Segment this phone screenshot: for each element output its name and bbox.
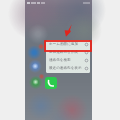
button[interactable]: 最近の連絡先を表示 [46,64,90,72]
staticText: ホーム画面に追加 [49,42,79,47]
button[interactable] [45,41,91,51]
staticText: 新規連絡先を作成 [49,50,78,55]
button[interactable]: ホーム画面に追加 [46,40,90,48]
staticText: 最近の連絡先を表示 [49,66,82,71]
staticText: 連絡先を検索 [49,58,71,63]
button[interactable]: 連絡先を検索 [46,56,90,64]
button[interactable]: Phone [45,77,57,89]
button[interactable]: 新規連絡先を作成 [46,48,90,56]
